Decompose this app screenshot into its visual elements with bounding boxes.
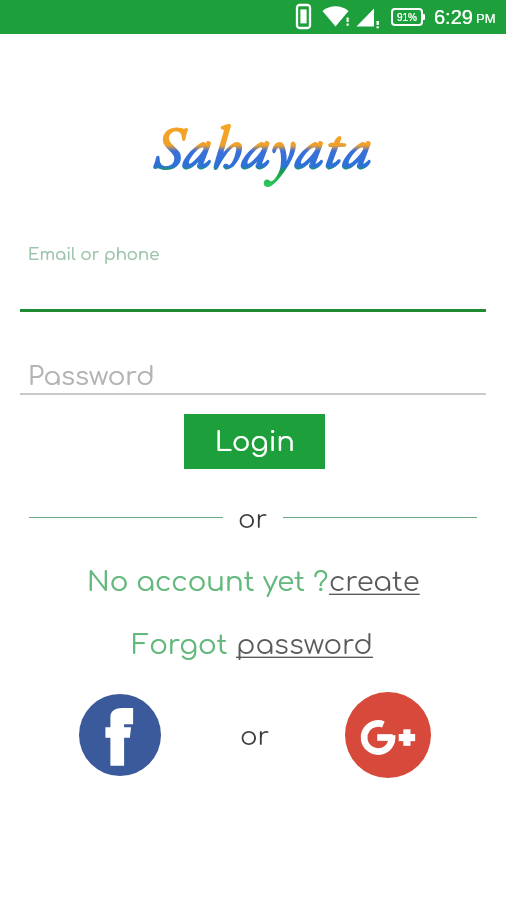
staticText: Sahayata: [155, 107, 374, 187]
button[interactable]: Login: [184, 414, 325, 469]
staticText: password: [236, 630, 374, 661]
staticText: PM: [476, 11, 496, 26]
staticText: 91%: [397, 12, 418, 23]
button[interactable]: Sign in with Google Plus: [345, 692, 431, 778]
staticText: Password: [28, 362, 155, 391]
staticText: 6:29: [434, 6, 473, 28]
button[interactable]: Forgot: [0, 630, 506, 661]
staticText: Forgot: [132, 630, 236, 661]
staticText: Email or phone: [28, 245, 160, 263]
staticText: Login: [215, 427, 295, 457]
staticText: create: [329, 567, 420, 598]
staticText: or: [240, 722, 270, 751]
button[interactable]: No account yet ?: [0, 567, 506, 598]
button[interactable]: Sign in with Facebook: [79, 694, 161, 776]
staticText: No account yet ?: [87, 567, 329, 598]
staticText: or: [238, 505, 268, 529]
